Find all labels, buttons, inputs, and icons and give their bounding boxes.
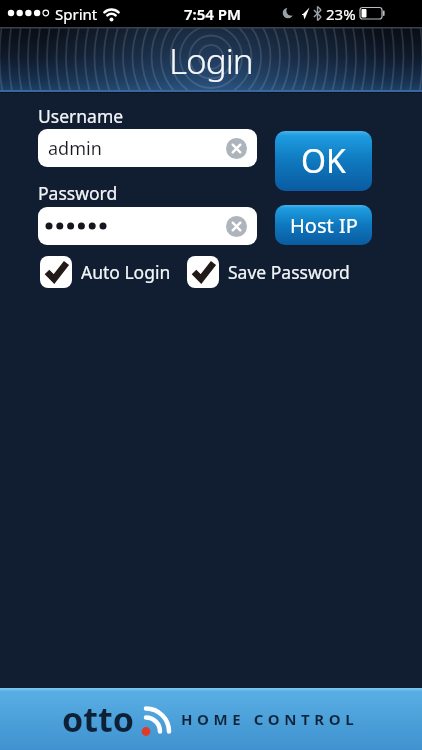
staticText: 7:54 PM	[184, 4, 241, 24]
button[interactable]	[38, 207, 257, 245]
staticText: Auto Login	[81, 260, 171, 284]
staticText: Save Password	[228, 260, 350, 284]
staticText: Host IP	[290, 212, 358, 239]
staticText: Password	[38, 181, 118, 205]
button[interactable]: Save Password	[187, 255, 350, 288]
staticText: otto	[62, 696, 135, 742]
staticText: Login	[169, 37, 253, 85]
staticText: admin	[48, 136, 102, 161]
staticText: HOME CONTROL	[181, 709, 359, 729]
staticText: Username	[38, 104, 124, 128]
staticText: OK	[301, 139, 346, 183]
button[interactable]: Host IP	[275, 205, 372, 245]
staticText: Sprint	[55, 4, 98, 24]
button[interactable]: admin	[38, 129, 257, 167]
button[interactable]: Auto Login	[40, 255, 171, 288]
button[interactable]: otto	[0, 688, 422, 750]
staticText: 23%	[326, 4, 356, 24]
button[interactable]: OK	[275, 131, 372, 191]
